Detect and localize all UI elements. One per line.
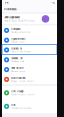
button[interactable]: Notifications — [2, 74, 57, 84]
button[interactable]: Day — [2, 100, 57, 113]
button[interactable]: Wonder, on — [2, 55, 57, 65]
button[interactable]: Galaxy, M — [2, 45, 57, 55]
staticText: Wonder, on — [11, 57, 22, 60]
staticText: Notifications — [11, 77, 25, 79]
staticText: Galaxy, M — [11, 47, 22, 50]
staticText: Preferences — [4, 8, 16, 11]
staticText: Developer tools — [11, 60, 24, 62]
staticText: Badges, sounds, banners — [11, 80, 34, 82]
staticText: Day — [11, 104, 15, 106]
staticText: ▪▪▮ — [51, 2, 54, 4]
staticText: Universe atlas browser — [11, 50, 31, 53]
staticText: Activity monitor, memory — [11, 93, 35, 96]
staticText: 9:41 — [4, 2, 8, 4]
staticText: Calendar events — [11, 41, 25, 43]
button[interactable]: Compass — [2, 25, 57, 35]
staticText: Apple ID, iCloud, Media & Purchases — [4, 20, 35, 22]
staticText: John Appleseed — [4, 16, 19, 19]
button[interactable]: Sent on site — [2, 65, 57, 74]
staticText: Appointments — [11, 37, 25, 40]
staticText: Schedule and reminders — [11, 107, 32, 109]
button[interactable]: John Appleseed — [2, 14, 57, 24]
staticText: CPU Usage — [11, 90, 23, 93]
button[interactable]: CPU Usage — [2, 86, 57, 100]
staticText: Sent on site — [11, 67, 23, 70]
staticText: Heading and level tools — [11, 31, 30, 33]
staticText: Network status — [11, 70, 25, 72]
staticText: Compass — [11, 28, 20, 30]
button[interactable]: Appointments — [2, 35, 57, 45]
